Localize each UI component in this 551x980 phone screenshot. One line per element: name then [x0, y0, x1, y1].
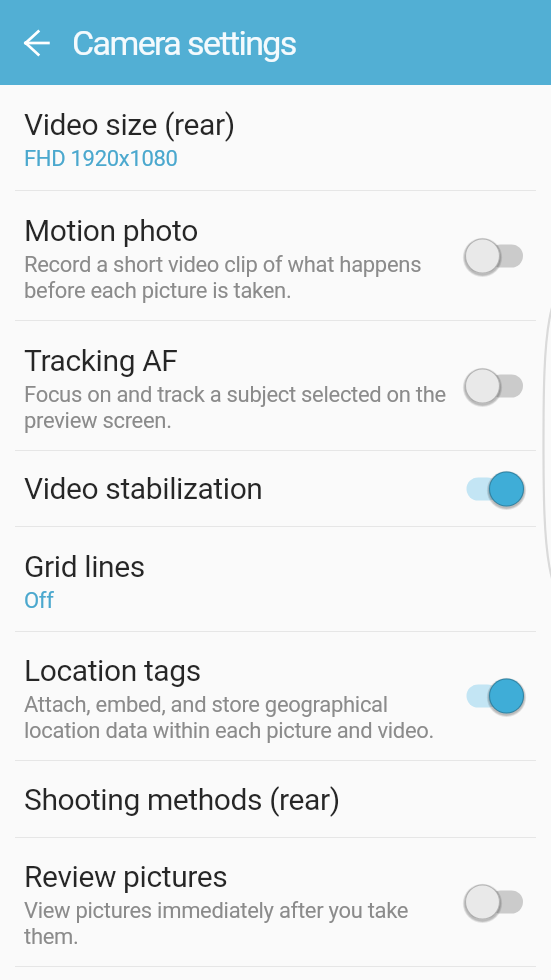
staticText: Video stabilization [24, 471, 263, 506]
button[interactable]: Video size (rear) [0, 85, 551, 190]
button[interactable]: Turn off [465, 467, 525, 511]
staticText: Review pictures [24, 859, 228, 894]
staticText: Attach, embed, and store geographical lo… [24, 692, 435, 743]
staticText: Off [24, 588, 54, 614]
button[interactable]: Motion photo [0, 191, 551, 320]
staticText: Tracking AF [24, 343, 178, 378]
button[interactable]: Video stabilization [0, 451, 551, 526]
button[interactable]: Turn on [465, 234, 525, 278]
staticText: Camera settings [72, 23, 296, 63]
staticText: FHD 1920x1080 [24, 146, 178, 172]
staticText: Focus on and track a subject selected on… [24, 382, 446, 433]
staticText: View pictures immediately after you take… [24, 898, 409, 949]
button[interactable]: Grid lines [0, 527, 551, 631]
button[interactable]: Turn on [465, 880, 525, 924]
button[interactable]: Turn off [465, 674, 525, 718]
button[interactable]: Back [8, 14, 66, 72]
staticText: Motion photo [24, 213, 198, 248]
staticText: Location tags [24, 653, 201, 688]
staticText: Video size (rear) [24, 107, 235, 142]
staticText: Grid lines [24, 549, 145, 584]
button[interactable]: Turn on [465, 364, 525, 408]
staticText: Record a short video clip of what happen… [24, 252, 422, 303]
button[interactable]: Location tags [0, 632, 551, 760]
button[interactable]: Shooting methods (rear) [0, 761, 551, 837]
button[interactable]: Review pictures [0, 838, 551, 966]
staticText: Shooting methods (rear) [24, 782, 340, 817]
button[interactable]: Tracking AF [0, 321, 551, 450]
